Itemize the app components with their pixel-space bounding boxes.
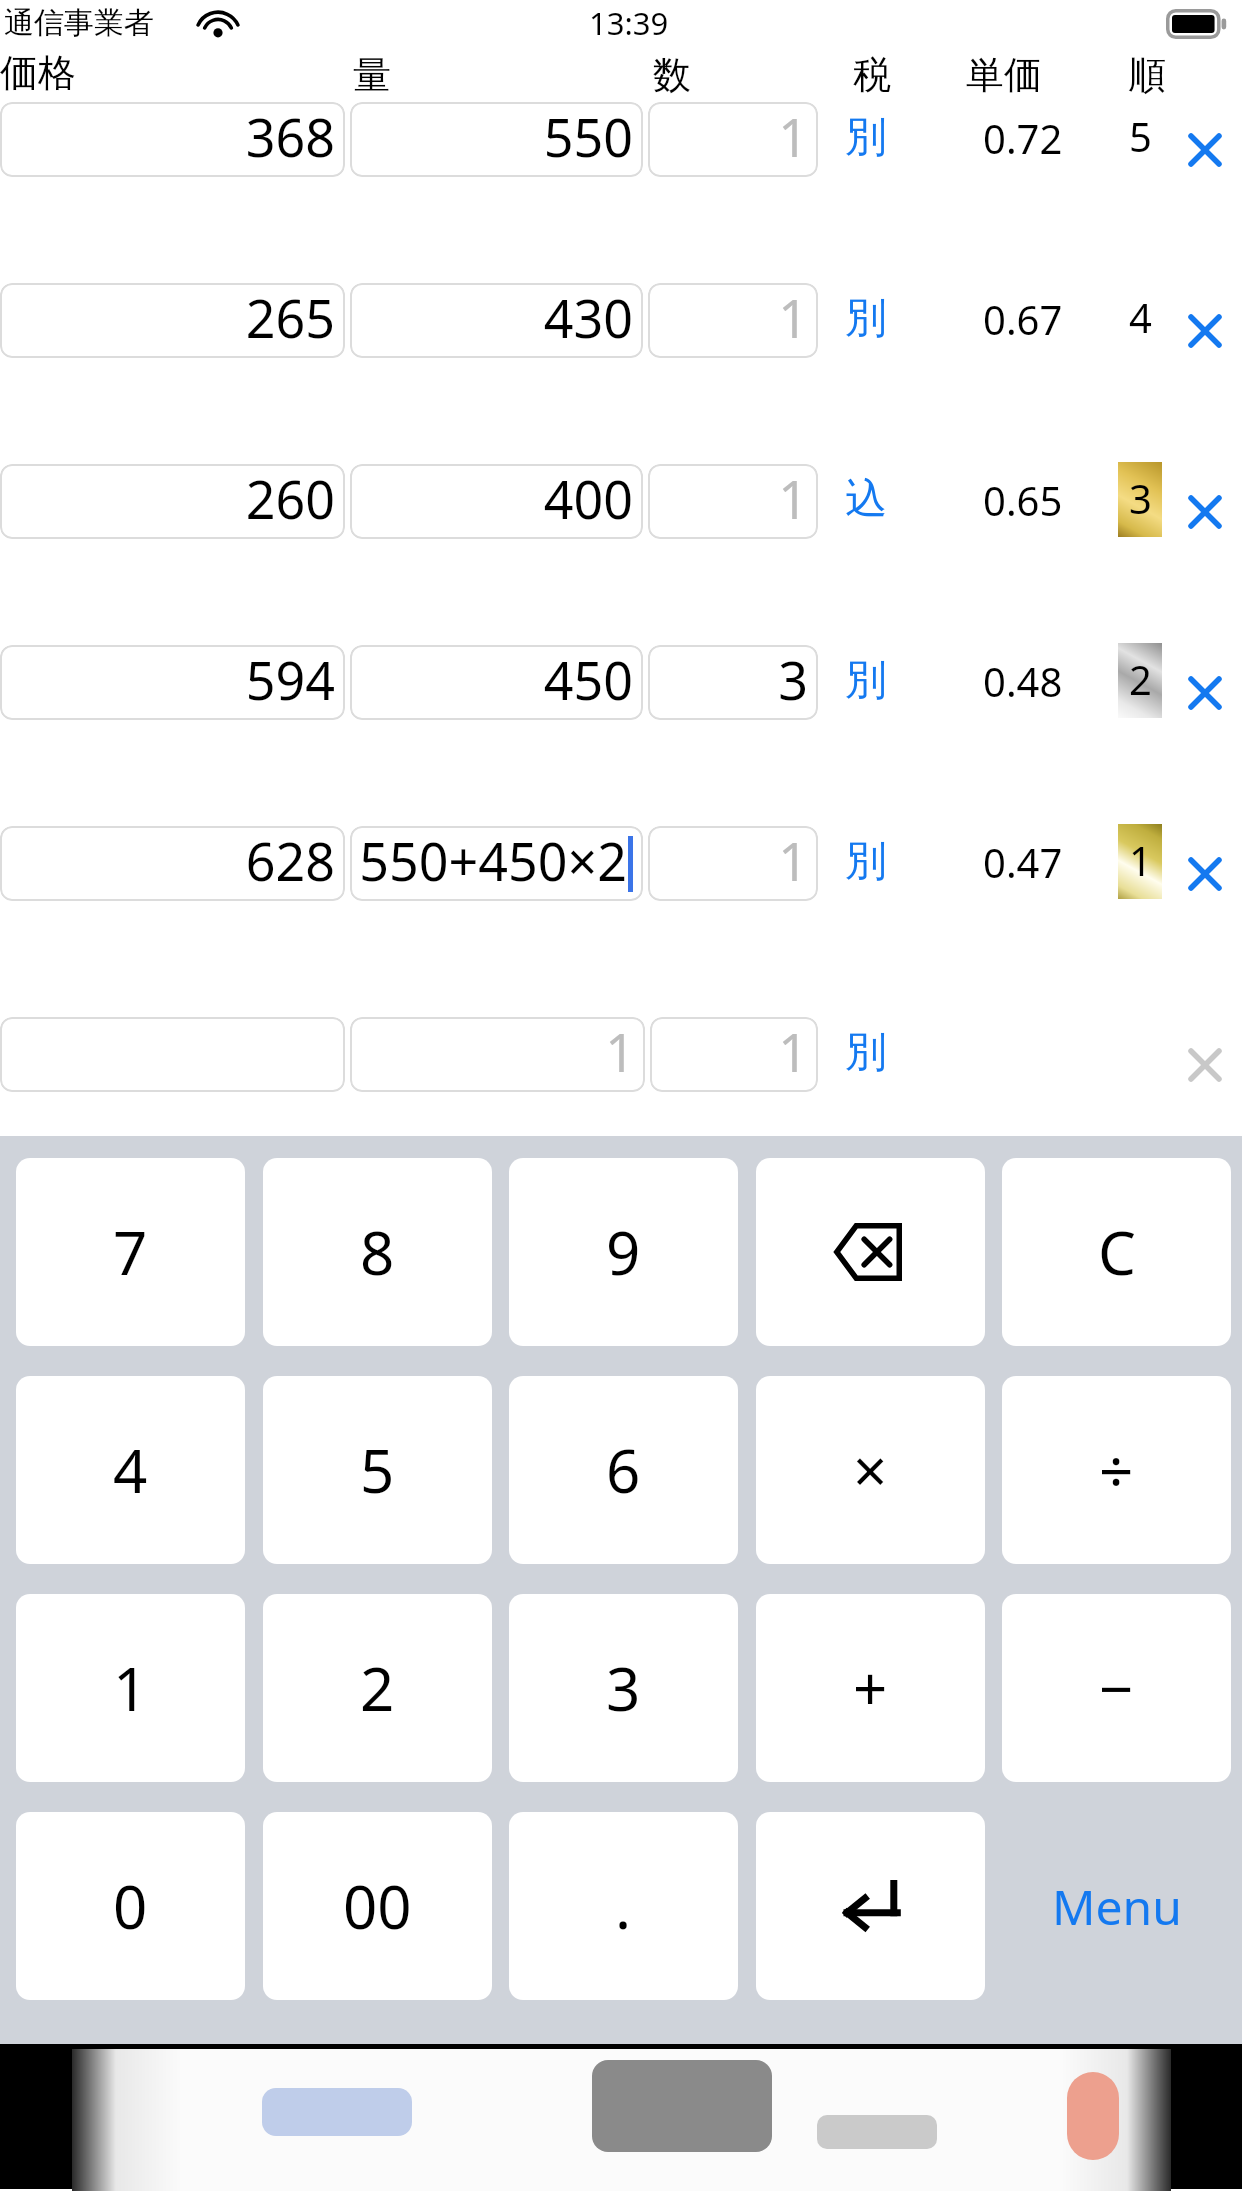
staticText: ×: [853, 1429, 888, 1511]
button[interactable]: Delete row: [1177, 1037, 1233, 1093]
button[interactable]: −: [1002, 1594, 1231, 1782]
button[interactable]: Delete row: [1177, 665, 1233, 721]
button[interactable]: Price: [0, 283, 345, 358]
button[interactable]: 6: [509, 1376, 738, 1564]
button[interactable]: 3: [1118, 462, 1162, 537]
button[interactable]: Quantity: [350, 283, 643, 358]
button[interactable]: 別: [845, 654, 887, 707]
button[interactable]: 別: [845, 292, 887, 345]
staticText: +: [853, 1647, 888, 1729]
button[interactable]: 別: [845, 111, 887, 164]
staticText: 1: [113, 1647, 148, 1729]
staticText: 1: [778, 102, 808, 172]
button[interactable]: 1: [16, 1594, 245, 1782]
button[interactable]: Price: [0, 826, 345, 901]
staticText: 0.72: [983, 111, 1063, 165]
staticText: 1: [778, 464, 808, 534]
staticText: 3: [1129, 471, 1152, 525]
staticText: 1: [778, 826, 808, 896]
button[interactable]: 2: [263, 1594, 492, 1782]
staticText: 628: [245, 826, 335, 896]
button[interactable]: Count: [650, 1017, 818, 1092]
button[interactable]: C: [1002, 1158, 1231, 1346]
staticText: 430: [543, 283, 633, 353]
staticText: 594: [245, 645, 335, 715]
staticText: 0.47: [983, 835, 1063, 889]
staticText: 5: [1129, 109, 1152, 163]
button[interactable]: Count: [648, 283, 818, 358]
staticText: −: [1099, 1647, 1134, 1729]
button[interactable]: 別: [845, 1026, 887, 1079]
button[interactable]: Count: [648, 826, 818, 901]
staticText: 順: [1128, 51, 1166, 99]
staticText: 8: [360, 1211, 395, 1293]
staticText: 9: [606, 1211, 641, 1293]
staticText: 368: [245, 102, 335, 172]
button[interactable]: 0: [16, 1812, 245, 2000]
button[interactable]: 5: [1118, 100, 1162, 175]
button[interactable]: Price: [0, 645, 345, 720]
button[interactable]: 8: [263, 1158, 492, 1346]
button[interactable]: Delete row: [1177, 303, 1233, 359]
staticText: 450: [543, 645, 633, 715]
staticText: 260: [245, 464, 335, 534]
staticText: 0: [113, 1865, 148, 1947]
staticText: 量: [353, 51, 391, 99]
button[interactable]: Quantity: [350, 1017, 645, 1092]
button[interactable]: ×: [756, 1376, 985, 1564]
staticText: ÷: [1099, 1429, 1134, 1511]
button[interactable]: ÷: [1002, 1376, 1231, 1564]
staticText: 数: [653, 51, 691, 99]
button[interactable]: Count: [648, 102, 818, 177]
staticText: 2: [360, 1647, 395, 1729]
staticText: 550+450×2: [359, 826, 627, 896]
button[interactable]: Count: [648, 645, 818, 720]
staticText: C: [1098, 1211, 1136, 1293]
button[interactable]: 2: [1118, 643, 1162, 718]
button[interactable]: Delete row: [1177, 846, 1233, 902]
button[interactable]: Quantity: [350, 102, 643, 177]
staticText: .: [615, 1865, 632, 1947]
button[interactable]: Price: [0, 464, 345, 539]
staticText: 3: [778, 645, 808, 715]
button[interactable]: 7: [16, 1158, 245, 1346]
staticText: 1: [605, 1017, 635, 1087]
button[interactable]: 5: [263, 1376, 492, 1564]
staticText: 0.67: [983, 292, 1063, 346]
button[interactable]: Delete row: [1177, 484, 1233, 540]
staticText: 400: [543, 464, 633, 534]
button[interactable]: 00: [263, 1812, 492, 2000]
button[interactable]: Quantity: [350, 464, 643, 539]
button[interactable]: 9: [509, 1158, 738, 1346]
button[interactable]: 4: [16, 1376, 245, 1564]
staticText: 4: [1129, 290, 1152, 344]
button[interactable]: 込: [845, 473, 887, 526]
button[interactable]: Price: [0, 1017, 345, 1092]
staticText: 3: [606, 1647, 641, 1729]
staticText: 0.65: [983, 473, 1063, 527]
button[interactable]: Quantity: [350, 645, 643, 720]
staticText: 2: [1129, 652, 1152, 706]
staticText: 6: [606, 1429, 641, 1511]
staticText: Menu: [1052, 1874, 1182, 1939]
button[interactable]: Quantity: [350, 826, 643, 901]
button[interactable]: Delete row: [1177, 122, 1233, 178]
button[interactable]: .: [509, 1812, 738, 2000]
button[interactable]: Backspace: [756, 1158, 985, 1346]
staticText: 7: [113, 1211, 148, 1293]
staticText: 1: [1129, 833, 1152, 887]
button[interactable]: 4: [1118, 281, 1162, 356]
button[interactable]: +: [756, 1594, 985, 1782]
staticText: 265: [245, 283, 335, 353]
staticText: 価格: [0, 49, 76, 97]
button[interactable]: Price: [0, 102, 345, 177]
button[interactable]: 3: [509, 1594, 738, 1782]
button[interactable]: Count: [648, 464, 818, 539]
staticText: 通信事業者: [4, 4, 154, 42]
button[interactable]: Menu: [1002, 1812, 1231, 2000]
button[interactable]: 1: [1118, 824, 1162, 899]
button[interactable]: Enter: [756, 1812, 985, 2000]
staticText: 4: [113, 1429, 148, 1511]
staticText: 1: [778, 283, 808, 353]
button[interactable]: 別: [845, 835, 887, 888]
